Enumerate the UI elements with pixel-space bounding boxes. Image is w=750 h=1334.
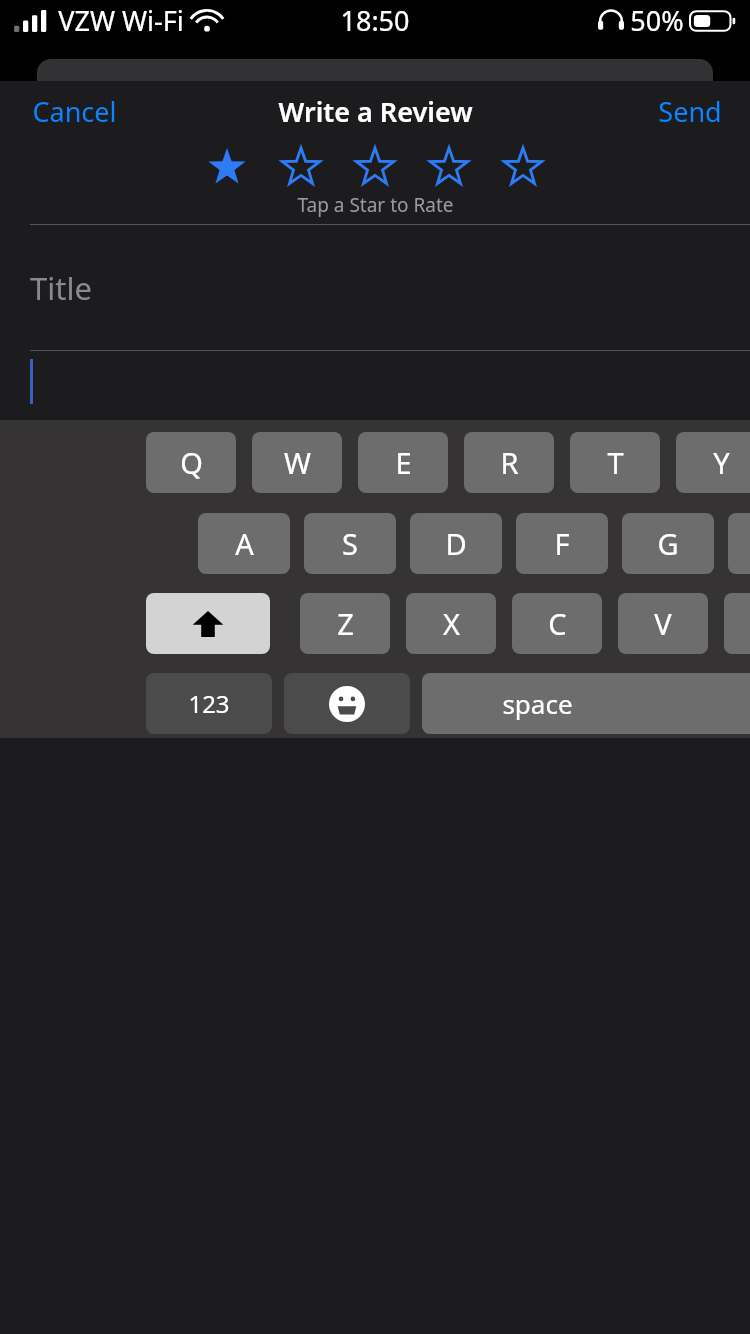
button[interactable]: Send: [644, 87, 736, 136]
button[interactable]: E: [358, 432, 448, 493]
staticText: F: [554, 524, 570, 563]
staticText: V: [654, 604, 672, 643]
button[interactable]: H: [728, 513, 750, 574]
staticText: space: [502, 686, 573, 721]
button[interactable]: Rate 1 stars: [190, 145, 264, 189]
button[interactable]: Emoji keyboard: [284, 673, 410, 734]
staticText: VZW Wi-Fi: [58, 2, 184, 39]
staticText: 123: [188, 687, 230, 720]
staticText: G: [657, 524, 679, 563]
button[interactable]: R: [464, 432, 554, 493]
staticText: 18:50: [340, 2, 410, 39]
button[interactable]: Z: [300, 593, 390, 654]
button[interactable]: Rate 5 stars: [486, 145, 560, 189]
button[interactable]: C: [512, 593, 602, 654]
button[interactable]: S: [304, 513, 396, 574]
button[interactable]: Y: [676, 432, 750, 493]
button[interactable]: A: [198, 513, 290, 574]
button[interactable]: Q: [146, 432, 236, 493]
button[interactable]: Cancel: [14, 87, 135, 136]
staticText: Write a Review: [278, 93, 473, 130]
staticText: Q: [180, 443, 203, 482]
button[interactable]: W: [252, 432, 342, 493]
staticText: Z: [337, 604, 354, 643]
button[interactable]: Rate 2 stars: [264, 145, 338, 189]
staticText: R: [500, 443, 519, 482]
staticText: Tap a Star to Rate: [297, 192, 454, 218]
staticText: W: [284, 443, 311, 482]
button[interactable]: D: [410, 513, 502, 574]
staticText: D: [445, 524, 467, 563]
staticText: E: [395, 443, 412, 482]
button[interactable]: Rate 4 stars: [412, 145, 486, 189]
staticText: Cancel: [32, 93, 117, 130]
staticText: S: [342, 524, 358, 563]
button[interactable]: B: [724, 593, 750, 654]
button[interactable]: T: [570, 432, 660, 493]
button[interactable]: V: [618, 593, 708, 654]
button[interactable]: 123: [146, 673, 272, 734]
staticText: C: [548, 604, 567, 643]
button[interactable]: Rate 3 stars: [338, 145, 412, 189]
button[interactable]: F: [516, 513, 608, 574]
staticText: A: [235, 524, 254, 563]
staticText: Send: [658, 93, 722, 130]
button[interactable]: Title: [0, 225, 750, 350]
button[interactable]: G: [622, 513, 714, 574]
button[interactable]: Shift: [146, 593, 270, 654]
staticText: Title: [30, 267, 92, 309]
staticText: Y: [713, 443, 730, 482]
staticText: X: [443, 604, 460, 643]
staticText: T: [607, 443, 624, 482]
button[interactable]: space: [422, 673, 750, 734]
button[interactable]: X: [406, 593, 496, 654]
staticText: 50%: [630, 2, 684, 39]
button[interactable]: [0, 351, 750, 420]
